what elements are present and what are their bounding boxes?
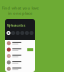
button[interactable]: All <box>6 31 10 35</box>
button[interactable] <box>5 66 35 72</box>
button[interactable] <box>5 46 35 53</box>
staticText: My Favourites <box>7 24 25 27</box>
button[interactable]: Category 2 <box>11 31 15 35</box>
button[interactable]: Category 6 <box>29 31 33 35</box>
button[interactable]: Category 5 <box>25 31 29 35</box>
staticText: Find what you love <box>1 5 38 10</box>
button[interactable] <box>5 59 35 66</box>
button[interactable]: Category 3 <box>16 31 20 35</box>
button[interactable]: Category 4 <box>20 31 24 35</box>
staticText: in one place <box>8 10 32 16</box>
button[interactable] <box>5 53 35 59</box>
button[interactable] <box>5 40 35 46</box>
